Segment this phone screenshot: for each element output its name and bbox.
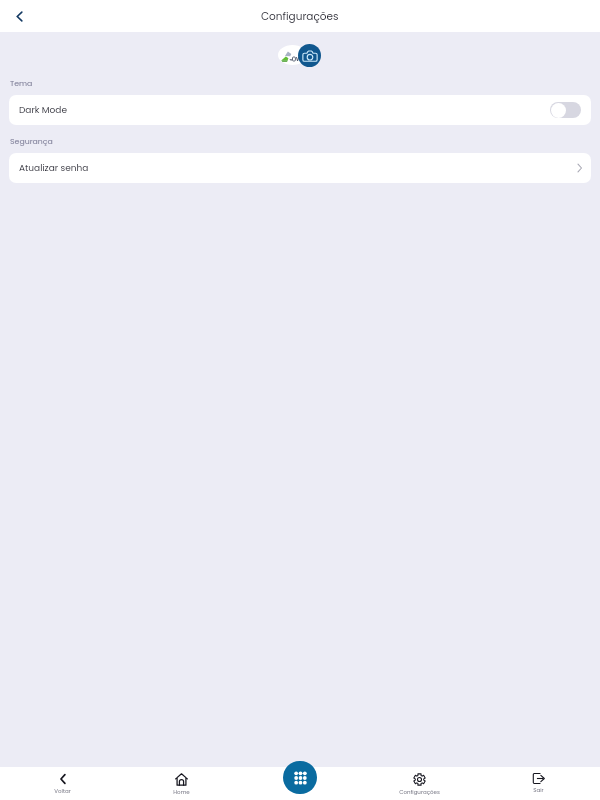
button[interactable]: Apps menu <box>283 761 317 794</box>
staticText: Home <box>173 788 190 796</box>
staticText: Segurança <box>10 136 53 147</box>
button[interactable]: Dark Mode <box>9 95 591 125</box>
button[interactable]: Home <box>122 767 241 800</box>
button[interactable]: Dark Mode <box>550 102 581 118</box>
staticText: Voltar <box>54 787 71 795</box>
button[interactable]: Atualizar senha <box>9 153 591 183</box>
button[interactable]: Sair <box>479 767 598 800</box>
button[interactable]: Back <box>6 3 32 29</box>
button[interactable]: Change photo <box>298 44 321 67</box>
staticText: Configurações <box>261 9 339 24</box>
button[interactable]: Configurações <box>360 767 479 800</box>
button[interactable]: Profile photo <box>278 45 307 65</box>
staticText: Dark Mode <box>19 104 68 117</box>
staticText: Configurações <box>399 788 440 796</box>
staticText: Tema <box>10 78 33 89</box>
staticText: Atualizar senha <box>19 162 89 175</box>
staticText: Sair <box>533 786 544 794</box>
button[interactable]: Voltar <box>3 767 122 800</box>
